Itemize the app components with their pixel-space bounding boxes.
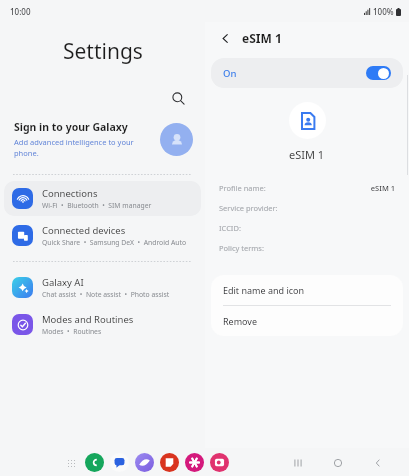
staticText: Chat assist • Note assist • Photo assist (42, 290, 170, 299)
button[interactable]: Connected devices (4, 218, 201, 253)
staticText: Modes • Routines (42, 327, 102, 336)
button[interactable]: Apps (62, 454, 80, 472)
staticText: Profile name: (219, 183, 370, 193)
button[interactable]: Edit name and icon (211, 275, 403, 305)
staticText: Service provider: (219, 203, 395, 213)
button[interactable]: Camera (210, 453, 229, 472)
button[interactable]: Modes and Routines (4, 307, 201, 342)
button[interactable]: Connections (4, 181, 201, 216)
staticText: Edit name and icon (223, 284, 305, 296)
staticText: Sign in to your Galaxy (14, 120, 128, 134)
button[interactable]: Gallery (185, 453, 204, 472)
button[interactable]: Remove (211, 306, 403, 336)
staticText: Modes and Routines (42, 313, 134, 326)
staticText: 100% (373, 6, 394, 17)
staticText: Connected devices (42, 224, 126, 237)
staticText: On (223, 67, 366, 80)
staticText: Wi-Fi • Bluetooth • SIM manager (42, 201, 152, 210)
staticText: Settings (63, 37, 143, 66)
button[interactable]: Back (215, 28, 235, 48)
staticText: Remove (223, 315, 258, 327)
button[interactable]: Sign in to your Galaxy (0, 116, 205, 166)
staticText: Quick Share • Samsung DeX • Android Auto (42, 238, 187, 247)
button[interactable]: Back (369, 454, 387, 472)
staticText: 10:00 (10, 6, 31, 17)
button[interactable]: Search (165, 85, 191, 111)
staticText: Add advanced intelligence to your phone. (14, 137, 134, 158)
staticText: eSIM 1 (242, 30, 282, 46)
button[interactable]: Galaxy AI (4, 270, 201, 305)
staticText: Galaxy AI (42, 276, 84, 289)
button[interactable]: Internet (135, 453, 154, 472)
staticText: ICCID: (219, 223, 395, 233)
button[interactable]: Home (329, 454, 347, 472)
staticText: eSIM 1 (289, 147, 325, 162)
button[interactable]: Phone (85, 453, 104, 472)
staticText: Policy terms: (219, 243, 395, 253)
staticText: Connections (42, 187, 98, 200)
button[interactable]: Notes (160, 453, 179, 472)
button[interactable]: Recents (289, 454, 307, 472)
staticText: eSIM 1 (370, 183, 395, 193)
button[interactable]: On (211, 58, 403, 88)
button[interactable]: Messages (110, 453, 129, 472)
